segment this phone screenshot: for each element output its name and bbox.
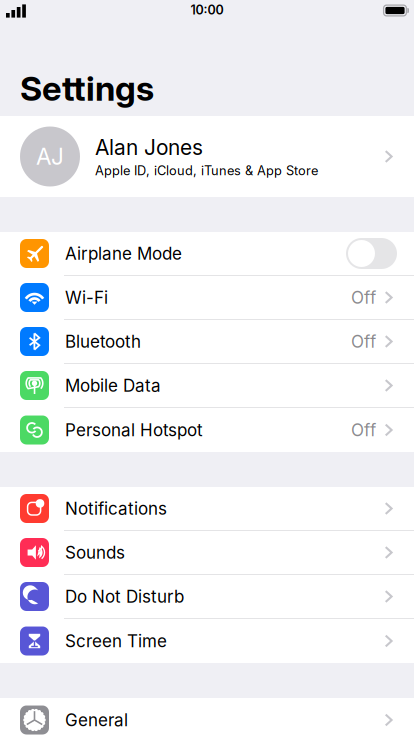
staticText: Mobile Data bbox=[65, 375, 161, 396]
button[interactable]: Wi-Fi bbox=[0, 276, 414, 320]
staticText: Notifications bbox=[65, 498, 167, 519]
button[interactable]: Do Not Disturb bbox=[0, 575, 414, 619]
staticText: AJ bbox=[36, 143, 64, 170]
staticText: 10:00 bbox=[190, 2, 223, 18]
button[interactable]: Personal Hotspot bbox=[0, 408, 414, 452]
staticText: Airplane Mode bbox=[65, 243, 182, 264]
staticText: Do Not Disturb bbox=[65, 586, 184, 607]
button[interactable]: Airplane Mode bbox=[0, 232, 414, 276]
button[interactable]: AJ bbox=[0, 116, 414, 197]
staticText: Sounds bbox=[65, 542, 125, 563]
staticText: Off bbox=[351, 287, 376, 308]
staticText: Off bbox=[351, 331, 376, 352]
button[interactable]: General bbox=[0, 698, 414, 736]
button[interactable]: Mobile Data bbox=[0, 364, 414, 408]
staticText: Bluetooth bbox=[65, 331, 141, 352]
staticText: Wi-Fi bbox=[65, 287, 108, 308]
staticText: General bbox=[65, 710, 128, 730]
button[interactable]: Notifications bbox=[0, 487, 414, 531]
button[interactable]: Screen Time bbox=[0, 619, 414, 663]
staticText: Personal Hotspot bbox=[65, 420, 203, 440]
staticText: Apple ID, iCloud, iTunes & App Store bbox=[95, 163, 318, 178]
button[interactable]: Bluetooth bbox=[0, 320, 414, 364]
staticText: Screen Time bbox=[65, 631, 167, 651]
staticText: Off bbox=[351, 420, 376, 440]
button[interactable]: Sounds bbox=[0, 531, 414, 575]
staticText: Settings bbox=[20, 68, 154, 109]
staticText: Alan Jones bbox=[95, 135, 203, 160]
